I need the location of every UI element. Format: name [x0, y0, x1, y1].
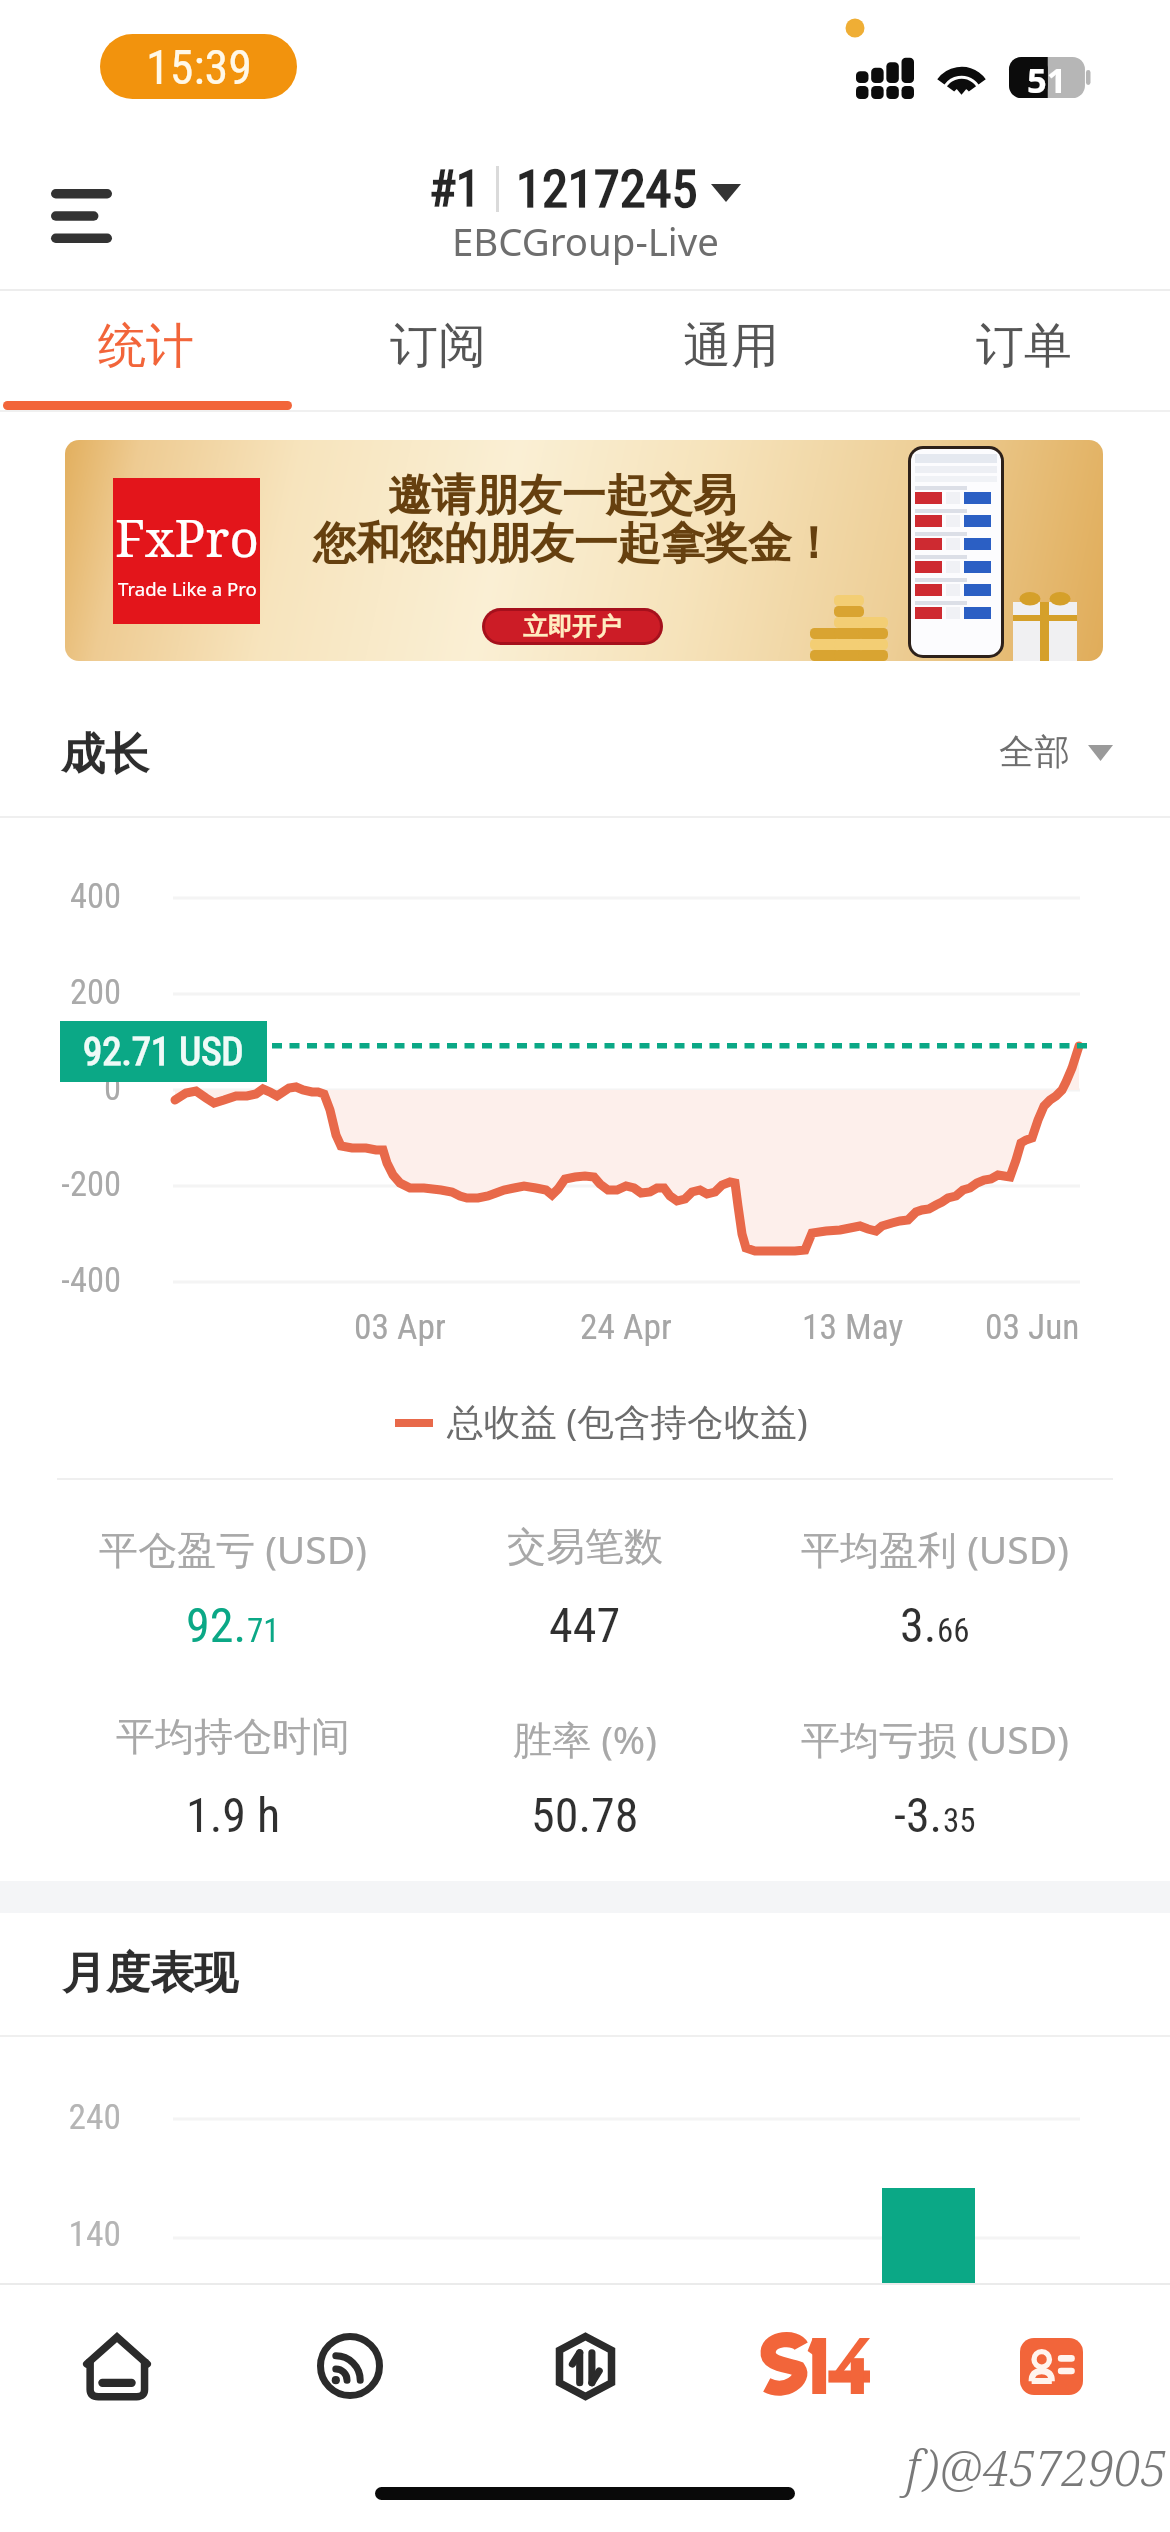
staticText: 1217245	[516, 158, 698, 220]
staticText: 订阅	[390, 316, 486, 376]
staticText: -200	[0, 1164, 121, 1204]
staticText: 51	[1027, 56, 1067, 97]
button[interactable]: Trade	[525, 2293, 645, 2439]
staticText: 月度表现	[62, 1946, 239, 2002]
staticText: 全部	[999, 730, 1070, 775]
staticText: 3.	[900, 1597, 937, 1653]
staticText: f)@4572905	[906, 2434, 1167, 2501]
staticText: 1.9 h	[186, 1787, 281, 1843]
staticText: EBCGroup-Live	[452, 215, 719, 267]
staticText: 平仓盈亏 (USD)	[99, 1522, 367, 1575]
staticText: 50.78	[531, 1787, 639, 1843]
staticText: 15:39	[146, 39, 252, 95]
staticText: 140	[0, 2213, 121, 2254]
staticText: -3.	[894, 1787, 943, 1843]
staticText: 200	[0, 972, 121, 1012]
staticText: 92.	[186, 1597, 247, 1653]
button[interactable]: #1	[285, 150, 885, 270]
button[interactable]: 全部	[999, 730, 1113, 775]
button[interactable]: FxPro promotion banner	[65, 440, 1103, 661]
staticText: 447	[549, 1597, 621, 1653]
staticText: 71	[247, 1611, 280, 1650]
staticText: 平均盈利 (USD)	[801, 1522, 1069, 1575]
staticText: #1	[429, 160, 481, 218]
button[interactable]: Menu	[16, 158, 146, 274]
staticText: 平均亏损 (USD)	[801, 1712, 1069, 1765]
staticText: 邀请朋友一起交易	[388, 468, 736, 523]
staticText: 成长	[61, 727, 150, 783]
staticText: 92.71 USD	[83, 1029, 244, 1075]
staticText: 交易笔数	[507, 1522, 663, 1571]
button[interactable]: 统计	[0, 291, 292, 410]
button[interactable]: Profile	[991, 2293, 1111, 2439]
staticText: 240	[0, 2096, 121, 2137]
staticText: 35	[943, 1801, 976, 1840]
staticText: 03 Jun	[985, 1306, 1080, 1347]
staticText: 03 Apr	[354, 1306, 446, 1347]
staticText: 统计	[98, 316, 194, 376]
staticText: FxPro	[115, 502, 259, 571]
staticText: 通用	[683, 316, 779, 376]
staticText: 平均持仓时间	[116, 1712, 350, 1761]
button[interactable]: 订阅	[292, 291, 584, 410]
button[interactable]: Signals	[290, 2293, 410, 2439]
staticText: 66	[937, 1611, 970, 1650]
staticText: 您和您的朋友一起拿奖金！	[313, 516, 835, 571]
staticText: Trade Like a Pro	[118, 576, 257, 601]
staticText: -400	[0, 1260, 121, 1300]
staticText: 立即开户	[523, 611, 622, 642]
button[interactable]: 订单	[877, 291, 1170, 410]
staticText: 订单	[976, 316, 1072, 376]
staticText: 总收益 (包含持仓收益)	[447, 1396, 808, 1446]
button[interactable]: Home	[57, 2293, 177, 2439]
button[interactable]: 通用	[584, 291, 877, 410]
staticText: 胜率 (%)	[513, 1712, 657, 1765]
staticText: 0	[0, 1068, 121, 1108]
staticText: 400	[0, 876, 121, 916]
button[interactable]: S14	[758, 2293, 878, 2439]
staticText: 13 May	[802, 1306, 904, 1347]
staticText: 24 Apr	[580, 1306, 672, 1347]
